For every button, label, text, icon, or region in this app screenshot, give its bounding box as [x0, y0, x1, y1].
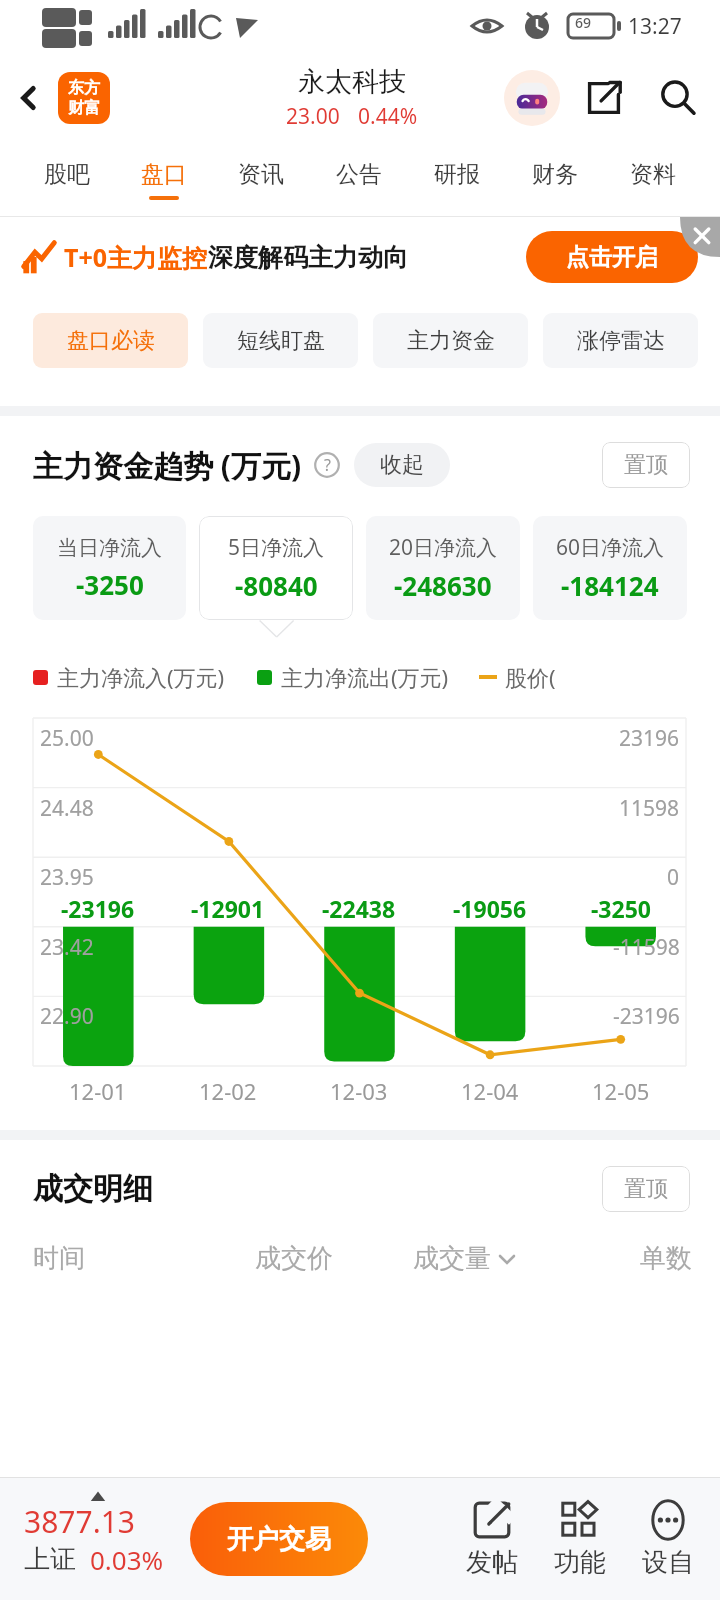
- staticText: 功能: [554, 1546, 606, 1579]
- staticText: 成交价: [255, 1242, 333, 1275]
- staticText: 11598: [619, 794, 680, 823]
- button[interactable]: 发帖: [448, 1478, 536, 1600]
- button[interactable]: 研报: [408, 144, 506, 216]
- staticText: 资料: [630, 160, 676, 189]
- staticText: 13:27: [628, 12, 682, 41]
- staticText: 12-03: [330, 1076, 388, 1106]
- staticText: 12-04: [461, 1076, 519, 1106]
- button[interactable]: 置顶: [602, 442, 690, 488]
- staticText: 23.95: [40, 863, 94, 892]
- staticText: 置顶: [624, 1175, 668, 1203]
- staticText: 24.48: [40, 794, 94, 823]
- button[interactable]: 点击开启: [526, 231, 698, 283]
- staticText: 上证: [24, 1543, 76, 1576]
- button[interactable]: 开户交易: [190, 1502, 368, 1576]
- staticText: 时间: [33, 1242, 85, 1275]
- staticText: 主力净流出(万元): [281, 662, 449, 692]
- staticText: 20日净流入: [389, 533, 498, 562]
- staticText: 开户交易: [227, 1523, 331, 1556]
- staticText: 资讯: [238, 160, 284, 189]
- button[interactable]: 财务: [506, 144, 604, 216]
- staticText: 收起: [380, 451, 424, 479]
- staticText: -3250: [76, 567, 144, 602]
- staticText: 发帖: [466, 1546, 518, 1579]
- staticText: 成交量: [413, 1242, 491, 1275]
- staticText: 3877.13: [24, 1501, 135, 1542]
- staticText: 主力资金: [407, 327, 495, 355]
- button[interactable]: Close: [680, 217, 720, 257]
- button[interactable]: 盘口必读: [33, 313, 188, 368]
- button[interactable]: 主力资金: [373, 313, 528, 368]
- staticText: 5日净流入: [228, 533, 325, 562]
- button[interactable]: 设自: [624, 1478, 712, 1600]
- button[interactable]: 功能: [536, 1478, 624, 1600]
- staticText: 研报: [434, 160, 480, 189]
- staticText: -12901: [191, 893, 265, 924]
- staticText: 点击开启: [566, 243, 658, 272]
- staticText: 深度解码主力动向: [208, 242, 408, 273]
- staticText: -23196: [613, 1002, 680, 1031]
- staticText: 成交明细: [33, 1170, 153, 1208]
- button[interactable]: Assistant: [504, 70, 560, 126]
- button[interactable]: 资讯: [212, 144, 310, 216]
- staticText: 23196: [619, 724, 680, 753]
- staticText: 0.03%: [90, 1542, 164, 1577]
- staticText: 盘口必读: [67, 327, 155, 355]
- staticText: -3250: [591, 893, 651, 924]
- button[interactable]: 成交量: [375, 1242, 554, 1275]
- button[interactable]: 5日净流入: [199, 516, 353, 620]
- button[interactable]: T+0主力监控: [0, 217, 720, 297]
- button[interactable]: 当日净流入: [33, 516, 186, 620]
- staticText: 永太科技: [298, 65, 406, 99]
- button[interactable]: 收起: [354, 443, 450, 487]
- button[interactable]: Help: [312, 450, 342, 480]
- staticText: -19056: [453, 893, 527, 924]
- staticText: 股价(: [505, 662, 556, 692]
- button[interactable]: 涨停雷达: [543, 313, 698, 368]
- staticText: 60日净流入: [556, 533, 665, 562]
- staticText: 22.90: [40, 1002, 94, 1031]
- staticText: -184124: [561, 568, 659, 603]
- button[interactable]: 资料: [604, 144, 702, 216]
- button[interactable]: 盘口: [115, 144, 212, 216]
- button[interactable]: 短线盯盘: [203, 313, 358, 368]
- staticText: -248630: [394, 568, 492, 603]
- staticText: 涨停雷达: [577, 327, 665, 355]
- staticText: 股吧: [44, 160, 90, 189]
- button[interactable]: 股吧: [18, 144, 115, 216]
- staticText: 12-02: [199, 1076, 257, 1106]
- staticText: 69: [575, 13, 592, 32]
- staticText: 盘口: [141, 160, 187, 189]
- staticText: 0: [667, 863, 680, 892]
- staticText: T+0主力监控: [64, 240, 208, 274]
- button[interactable]: Search: [650, 70, 706, 126]
- staticText: -80840: [235, 568, 318, 603]
- button[interactable]: 60日净流入: [533, 516, 687, 620]
- button[interactable]: 置顶: [602, 1166, 690, 1212]
- staticText: -11598: [613, 933, 680, 962]
- staticText: 单数: [640, 1242, 692, 1275]
- button[interactable]: East Money: [58, 72, 110, 124]
- staticText: 置顶: [624, 451, 668, 479]
- staticText: 东方: [68, 78, 100, 98]
- staticText: 0.44%: [358, 102, 418, 131]
- staticText: 12-05: [592, 1076, 650, 1106]
- staticText: 23.42: [40, 933, 94, 962]
- staticText: 公告: [336, 160, 382, 189]
- button[interactable]: 公告: [310, 144, 408, 216]
- staticText: 23.00: [286, 102, 340, 131]
- staticText: 当日净流入: [57, 535, 162, 561]
- button[interactable]: 20日净流入: [366, 516, 520, 620]
- button[interactable]: Share: [576, 70, 632, 126]
- staticText: ?: [324, 454, 331, 476]
- staticText: -22438: [322, 893, 396, 924]
- staticText: 设自: [642, 1546, 694, 1579]
- staticText: 财务: [532, 160, 578, 189]
- staticText: 财富: [68, 98, 100, 118]
- staticText: 主力净流入(万元): [57, 662, 225, 692]
- button[interactable]: Back: [2, 71, 56, 125]
- staticText: 12-01: [69, 1076, 127, 1106]
- staticText: 短线盯盘: [237, 327, 325, 355]
- button[interactable]: 3877.13: [20, 1501, 168, 1577]
- staticText: 25.00: [40, 724, 94, 753]
